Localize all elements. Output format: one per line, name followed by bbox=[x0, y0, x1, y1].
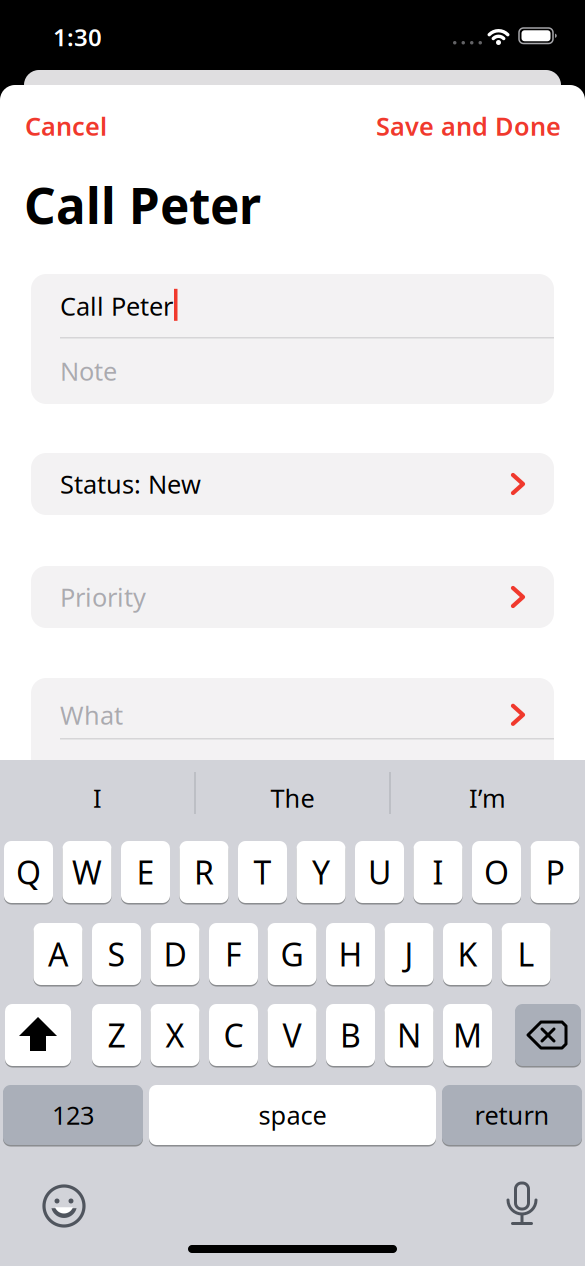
button[interactable]: P bbox=[530, 840, 579, 904]
staticText: V bbox=[282, 1014, 301, 1056]
staticText: Priority bbox=[60, 580, 146, 614]
button[interactable]: K bbox=[443, 922, 492, 986]
button[interactable]: W bbox=[62, 840, 111, 904]
button[interactable]: space bbox=[149, 1084, 436, 1146]
staticText: 123 bbox=[52, 1098, 94, 1132]
staticText: B bbox=[340, 1014, 361, 1056]
staticText: space bbox=[258, 1098, 326, 1132]
button[interactable]: V bbox=[267, 1003, 316, 1067]
staticText: T bbox=[253, 851, 271, 893]
button[interactable]: B bbox=[326, 1003, 375, 1067]
staticText: I bbox=[432, 851, 443, 893]
staticText: Q bbox=[16, 851, 41, 893]
button[interactable]: U bbox=[355, 840, 404, 904]
staticText: D bbox=[163, 933, 186, 975]
staticText: S bbox=[107, 933, 125, 975]
staticText: H bbox=[338, 933, 362, 975]
staticText: Y bbox=[312, 851, 330, 893]
staticText: Call Peter bbox=[60, 289, 173, 323]
staticText: X bbox=[165, 1014, 184, 1056]
button[interactable]: F bbox=[209, 922, 258, 986]
staticText: Note bbox=[60, 354, 117, 388]
button[interactable]: Dictation bbox=[505, 1183, 539, 1227]
button[interactable]: Status: New bbox=[31, 453, 554, 515]
button[interactable]: 123 bbox=[3, 1084, 143, 1146]
staticText: Z bbox=[107, 1014, 125, 1056]
button[interactable]: Call Peter bbox=[31, 274, 554, 404]
staticText: L bbox=[517, 933, 534, 975]
staticText: F bbox=[225, 933, 242, 975]
button[interactable]: I bbox=[413, 840, 462, 904]
staticText: G bbox=[280, 933, 303, 975]
button[interactable]: The bbox=[195, 760, 390, 826]
staticText: N bbox=[397, 1014, 421, 1056]
button[interactable]: A bbox=[33, 922, 82, 986]
staticText: E bbox=[136, 851, 154, 893]
staticText: O bbox=[484, 851, 509, 893]
button[interactable]: Z bbox=[92, 1003, 141, 1067]
button[interactable]: O bbox=[472, 840, 521, 904]
button[interactable]: M bbox=[443, 1003, 492, 1067]
button[interactable]: G bbox=[267, 922, 316, 986]
staticText: Call Peter bbox=[24, 172, 261, 237]
button[interactable]: C bbox=[209, 1003, 258, 1067]
staticText: C bbox=[223, 1014, 243, 1056]
staticText: U bbox=[368, 851, 391, 893]
staticText: Cancel bbox=[25, 109, 107, 143]
staticText: R bbox=[194, 851, 214, 893]
button[interactable]: Cancel bbox=[25, 109, 107, 143]
button[interactable]: Shift bbox=[5, 1003, 71, 1067]
staticText: return bbox=[474, 1098, 549, 1132]
button[interactable]: Delete bbox=[515, 1003, 581, 1067]
staticText: P bbox=[545, 851, 564, 893]
button[interactable]: Y bbox=[296, 840, 345, 904]
staticText: M bbox=[453, 1014, 482, 1056]
staticText: Status: New bbox=[60, 467, 201, 501]
button[interactable]: J bbox=[384, 922, 433, 986]
button[interactable]: Save and Done bbox=[376, 109, 561, 143]
button[interactable]: Priority bbox=[31, 566, 554, 628]
button[interactable]: R bbox=[179, 840, 228, 904]
button[interactable]: What bbox=[31, 678, 554, 788]
staticText: W bbox=[72, 851, 102, 893]
button[interactable]: Q bbox=[4, 840, 53, 904]
staticText: Save and Done bbox=[376, 109, 561, 143]
button[interactable]: S bbox=[92, 922, 141, 986]
button[interactable]: N bbox=[384, 1003, 433, 1067]
button[interactable]: E bbox=[121, 840, 170, 904]
button[interactable]: X bbox=[150, 1003, 199, 1067]
staticText: What bbox=[60, 698, 123, 732]
button[interactable]: L bbox=[501, 922, 550, 986]
staticText: A bbox=[48, 933, 68, 975]
staticText: The bbox=[270, 781, 314, 815]
button[interactable]: return bbox=[442, 1084, 582, 1146]
staticText: J bbox=[404, 933, 413, 975]
staticText: 1:30 bbox=[53, 21, 102, 53]
staticText: K bbox=[457, 933, 477, 975]
button[interactable]: Emoji bbox=[43, 1185, 85, 1227]
button[interactable]: I’m bbox=[390, 760, 585, 826]
button[interactable]: T bbox=[238, 840, 287, 904]
staticText: I bbox=[93, 781, 102, 815]
staticText: I’m bbox=[469, 781, 506, 815]
button[interactable]: I bbox=[0, 760, 195, 826]
button[interactable]: H bbox=[326, 922, 375, 986]
button[interactable]: D bbox=[150, 922, 199, 986]
